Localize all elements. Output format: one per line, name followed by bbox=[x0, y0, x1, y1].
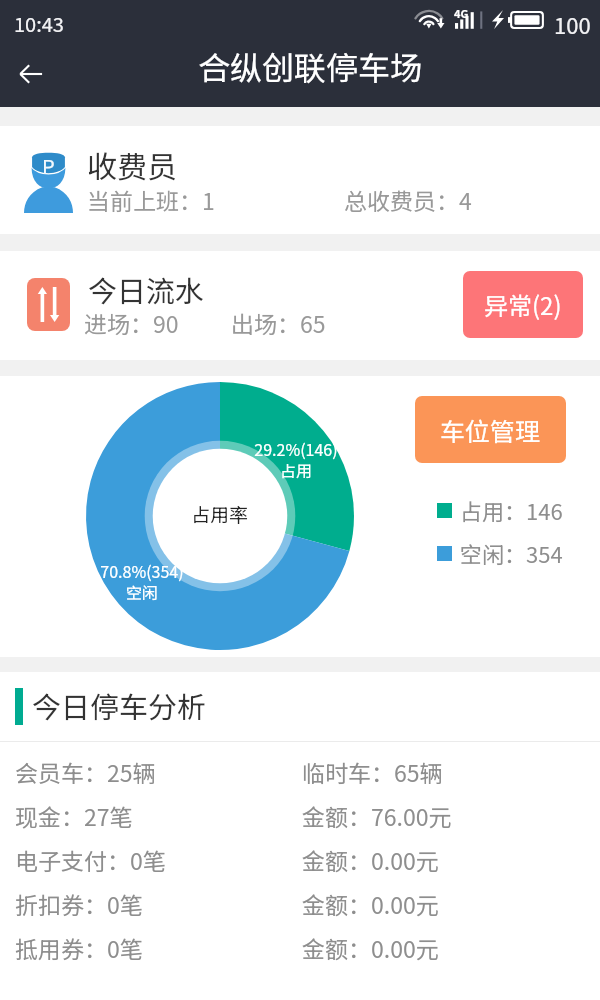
staticText: 空闲：354 bbox=[460, 537, 563, 569]
staticText: 今日停车分析 bbox=[32, 684, 207, 726]
staticText: 临时车：65辆 bbox=[302, 755, 443, 788]
staticText: 占用：146 bbox=[460, 494, 563, 526]
button[interactable]: 异常(2) bbox=[463, 271, 583, 338]
button[interactable]: Back bbox=[6, 48, 58, 100]
staticText: 电子支付：0笔 bbox=[15, 843, 166, 876]
staticText: 异常(2) bbox=[484, 287, 562, 322]
staticText: 当前上班：1 bbox=[87, 183, 215, 216]
staticText: P bbox=[42, 151, 55, 180]
staticText: 进场：90 bbox=[84, 306, 179, 339]
staticText: 100 bbox=[554, 8, 591, 40]
staticText: 金额：0.00元 bbox=[302, 843, 439, 876]
staticText: 今日流水 bbox=[88, 268, 205, 310]
staticText: 收费员 bbox=[87, 143, 177, 186]
staticText: 出场：65 bbox=[231, 306, 326, 339]
staticText: 金额：0.00元 bbox=[302, 887, 439, 920]
staticText: 金额：0.00元 bbox=[302, 931, 439, 964]
staticText: 金额：76.00元 bbox=[302, 799, 452, 832]
staticText: 车位管理 bbox=[440, 412, 541, 448]
staticText: 会员车：25辆 bbox=[15, 755, 156, 788]
staticText: 折扣券：0笔 bbox=[15, 887, 143, 920]
staticText: 抵用券：0笔 bbox=[15, 931, 143, 964]
staticText: 合纵创联停车场 bbox=[198, 43, 423, 89]
button[interactable]: 车位管理 bbox=[415, 396, 566, 463]
staticText: 10:43 bbox=[14, 9, 64, 38]
staticText: 4G bbox=[454, 5, 469, 21]
staticText: 29.2%(146) 占用 bbox=[254, 437, 338, 481]
staticText: 70.8%(354) 空闲 bbox=[100, 559, 184, 603]
staticText: 占用率 bbox=[191, 500, 249, 528]
staticText: 现金：27笔 bbox=[15, 799, 133, 832]
staticText: 总收费员：4 bbox=[344, 183, 472, 216]
